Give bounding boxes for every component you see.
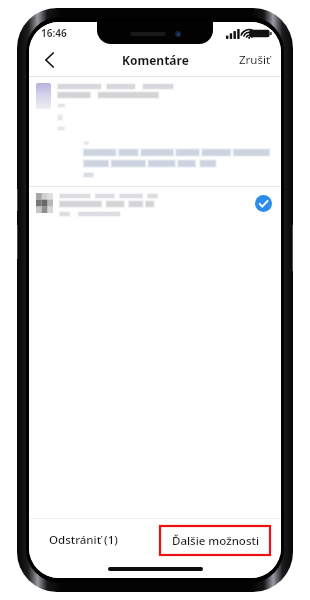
staticText: 16:46: [41, 26, 67, 40]
button[interactable]: Ďalšie možnosti: [160, 526, 270, 555]
button[interactable]: Back: [29, 44, 69, 76]
staticText: Ďalšie možnosti: [172, 533, 259, 549]
staticText: Odstrániť (1): [49, 532, 118, 548]
button[interactable]: [29, 139, 281, 186]
button[interactable]: Selected: [253, 193, 273, 213]
button[interactable]: Zrušiť: [239, 44, 271, 76]
staticText: Komentáre: [122, 52, 189, 68]
button[interactable]: Odstrániť (1): [41, 526, 126, 554]
button[interactable]: [29, 77, 281, 139]
staticText: Zrušiť: [239, 52, 271, 68]
button[interactable]: Selected: [29, 186, 281, 228]
